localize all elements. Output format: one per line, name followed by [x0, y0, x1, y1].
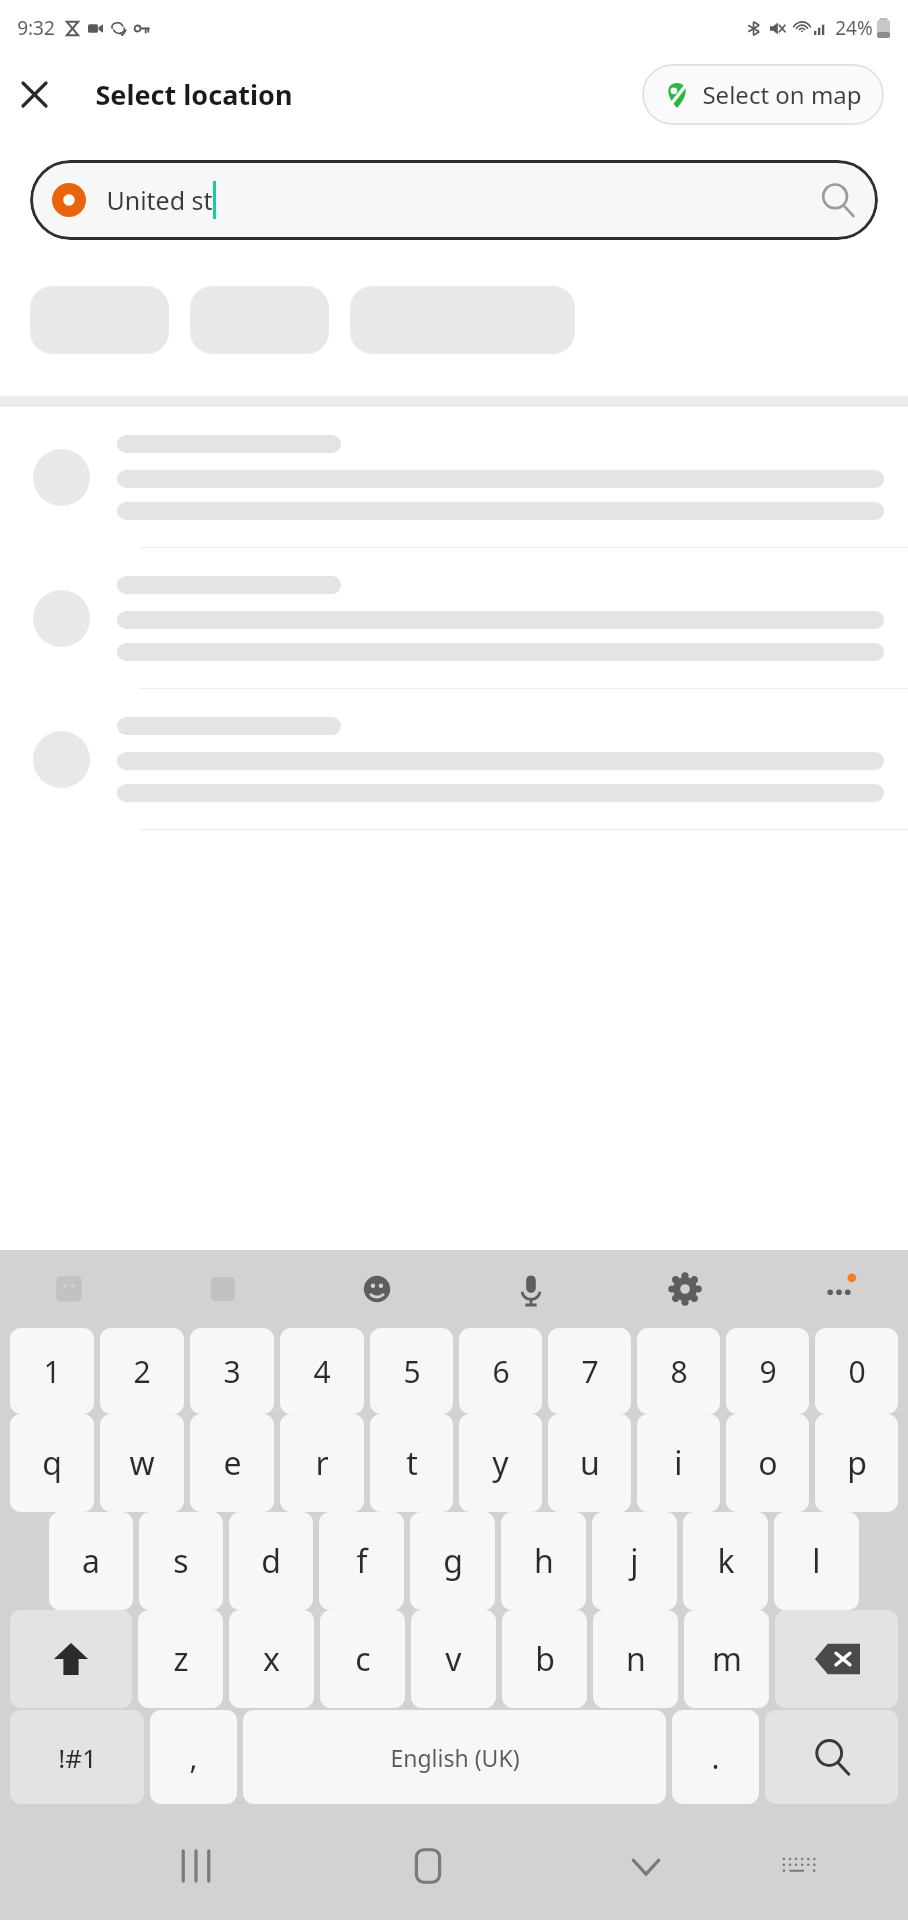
- button[interactable]: h: [501, 1512, 586, 1610]
- staticText: w: [129, 1441, 155, 1485]
- button[interactable]: f: [319, 1512, 404, 1610]
- button[interactable]: 0: [815, 1328, 898, 1414]
- staticText: m: [712, 1637, 742, 1681]
- staticText: u: [580, 1441, 600, 1485]
- staticText: 24%: [835, 15, 873, 41]
- button[interactable]: p: [815, 1414, 898, 1512]
- button[interactable]: [0, 548, 908, 688]
- button[interactable]: More options: [810, 1260, 868, 1318]
- button[interactable]: Recents: [159, 1829, 233, 1903]
- button[interactable]: GIF: [194, 1260, 252, 1318]
- button[interactable]: 8: [637, 1328, 720, 1414]
- button[interactable]: g: [410, 1512, 495, 1610]
- button[interactable]: o: [726, 1414, 809, 1512]
- button[interactable]: .: [672, 1710, 759, 1804]
- button[interactable]: [190, 286, 329, 354]
- button[interactable]: e: [190, 1414, 274, 1512]
- button[interactable]: !#1: [10, 1710, 144, 1804]
- button[interactable]: ,: [150, 1710, 237, 1804]
- staticText: English (UK): [390, 1742, 520, 1773]
- button[interactable]: j: [592, 1512, 677, 1610]
- button[interactable]: 7: [548, 1328, 631, 1414]
- button[interactable]: c: [320, 1610, 405, 1708]
- button[interactable]: Change keyboard: [762, 1829, 836, 1903]
- staticText: f: [356, 1539, 368, 1583]
- button[interactable]: w: [100, 1414, 184, 1512]
- button[interactable]: b: [502, 1610, 587, 1708]
- button[interactable]: 9: [726, 1328, 809, 1414]
- button[interactable]: Close: [8, 68, 60, 120]
- button[interactable]: Search: [765, 1710, 898, 1804]
- other: Search: [820, 182, 856, 218]
- button[interactable]: English (UK): [243, 1710, 666, 1804]
- staticText: q: [42, 1441, 62, 1485]
- button[interactable]: [0, 407, 908, 547]
- staticText: c: [355, 1637, 371, 1681]
- staticText: d: [261, 1539, 281, 1583]
- staticText: s: [173, 1539, 189, 1583]
- button[interactable]: [350, 286, 575, 354]
- staticText: i: [674, 1441, 683, 1485]
- button[interactable]: Keyboard settings: [656, 1260, 714, 1318]
- staticText: 7: [581, 1351, 599, 1392]
- button[interactable]: [30, 286, 169, 354]
- staticText: z: [173, 1637, 189, 1681]
- staticText: 9: [759, 1351, 777, 1392]
- button[interactable]: Emoji: [348, 1260, 406, 1318]
- button[interactable]: Hide keyboard: [609, 1829, 683, 1903]
- button[interactable]: a: [49, 1512, 133, 1610]
- button[interactable]: 1: [10, 1328, 94, 1414]
- button[interactable]: 2: [100, 1328, 184, 1414]
- button[interactable]: [0, 689, 908, 829]
- staticText: 4: [313, 1351, 331, 1392]
- staticText: ,: [189, 1737, 198, 1778]
- staticText: n: [626, 1637, 646, 1681]
- button[interactable]: i: [637, 1414, 720, 1512]
- button[interactable]: d: [229, 1512, 313, 1610]
- staticText: 0: [848, 1351, 866, 1392]
- button[interactable]: Home: [391, 1829, 465, 1903]
- staticText: h: [534, 1539, 554, 1583]
- button[interactable]: s: [139, 1512, 223, 1610]
- staticText: g: [443, 1539, 463, 1583]
- button[interactable]: 6: [459, 1328, 542, 1414]
- button[interactable]: r: [280, 1414, 364, 1512]
- staticText: e: [223, 1441, 242, 1485]
- button[interactable]: q: [10, 1414, 94, 1512]
- button[interactable]: y: [459, 1414, 542, 1512]
- button[interactable]: 5: [370, 1328, 453, 1414]
- button[interactable]: 4: [280, 1328, 364, 1414]
- button[interactable]: v: [411, 1610, 496, 1708]
- button[interactable]: Select on map: [642, 64, 884, 125]
- staticText: j: [630, 1539, 639, 1583]
- staticText: 3: [223, 1351, 241, 1392]
- staticText: a: [82, 1539, 100, 1583]
- staticText: t: [406, 1441, 418, 1485]
- staticText: 1: [43, 1351, 61, 1392]
- button[interactable]: x: [229, 1610, 314, 1708]
- button[interactable]: u: [548, 1414, 631, 1512]
- staticText: .: [711, 1737, 720, 1778]
- button[interactable]: United st: [30, 160, 878, 240]
- button[interactable]: n: [593, 1610, 678, 1708]
- button[interactable]: t: [370, 1414, 453, 1512]
- button[interactable]: m: [684, 1610, 769, 1708]
- button[interactable]: k: [683, 1512, 768, 1610]
- button[interactable]: Sticker: [40, 1260, 98, 1318]
- button[interactable]: l: [774, 1512, 859, 1610]
- staticText: United st: [106, 183, 213, 217]
- button[interactable]: Shift: [10, 1610, 132, 1708]
- staticText: k: [717, 1539, 735, 1583]
- staticText: p: [847, 1441, 867, 1485]
- staticText: v: [445, 1637, 462, 1681]
- button[interactable]: 3: [190, 1328, 274, 1414]
- staticText: !#1: [58, 1740, 97, 1775]
- staticText: 9:32: [17, 15, 55, 41]
- button[interactable]: Backspace: [775, 1610, 898, 1708]
- staticText: o: [758, 1441, 778, 1485]
- button[interactable]: z: [138, 1610, 223, 1708]
- staticText: b: [535, 1637, 555, 1681]
- staticText: 6: [492, 1351, 510, 1392]
- staticText: x: [263, 1637, 280, 1681]
- button[interactable]: Voice input: [502, 1260, 560, 1318]
